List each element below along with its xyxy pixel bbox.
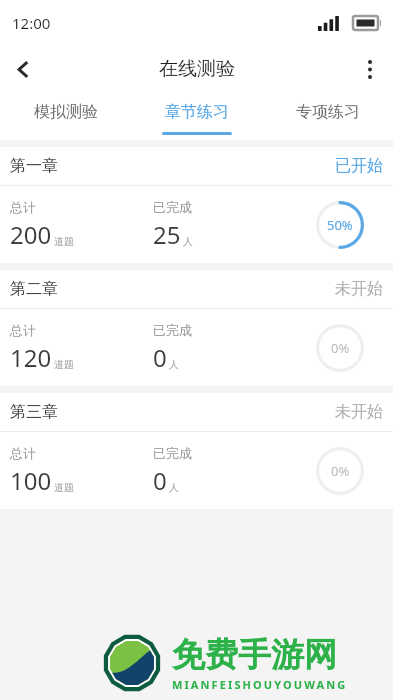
staticText: 模拟测验 bbox=[34, 102, 98, 122]
staticText: 0 bbox=[153, 464, 167, 497]
staticText: 免费手游网 bbox=[172, 634, 337, 676]
staticText: 25 bbox=[153, 218, 181, 251]
button[interactable]: 第二章 bbox=[0, 270, 393, 386]
button[interactable]: More options bbox=[347, 46, 393, 92]
staticText: 0 bbox=[153, 341, 167, 374]
staticText: 120 bbox=[10, 341, 52, 374]
button[interactable]: Back bbox=[0, 46, 46, 92]
staticText: 人 bbox=[169, 481, 179, 494]
staticText: 0% bbox=[331, 462, 350, 480]
staticText: 未开始 bbox=[335, 402, 383, 422]
staticText: 道题 bbox=[54, 481, 74, 494]
staticText: 未开始 bbox=[335, 279, 383, 299]
staticText: 人 bbox=[183, 235, 193, 248]
staticText: 总计 bbox=[10, 199, 36, 215]
staticText: 100 bbox=[10, 464, 52, 497]
button[interactable]: 章节练习 bbox=[131, 92, 262, 140]
staticText: 12:00 bbox=[12, 13, 51, 33]
button[interactable]: 模拟测验 bbox=[0, 92, 131, 140]
staticText: 50% bbox=[327, 216, 353, 234]
button[interactable]: 第三章 bbox=[0, 393, 393, 509]
staticText: 第三章 bbox=[10, 402, 58, 422]
button[interactable]: 专项练习 bbox=[262, 92, 393, 140]
staticText: 总计 bbox=[10, 322, 36, 338]
staticText: 总计 bbox=[10, 445, 36, 461]
staticText: 章节练习 bbox=[165, 102, 229, 122]
staticText: 0% bbox=[331, 339, 350, 357]
staticText: 道题 bbox=[54, 235, 74, 248]
staticText: 道题 bbox=[54, 358, 74, 371]
staticText: 已完成 bbox=[153, 445, 192, 461]
staticText: 第二章 bbox=[10, 279, 58, 299]
staticText: 人 bbox=[169, 358, 179, 371]
staticText: 已开始 bbox=[335, 156, 383, 176]
staticText: 在线测验 bbox=[159, 57, 235, 81]
staticText: 200 bbox=[10, 218, 52, 251]
staticText: 第一章 bbox=[10, 156, 58, 176]
button[interactable]: 第一章 bbox=[0, 147, 393, 263]
staticText: MIANFEISHOUYOUWANG bbox=[172, 677, 348, 692]
staticText: 已完成 bbox=[153, 199, 192, 215]
staticText: 专项练习 bbox=[296, 102, 360, 122]
staticText: 已完成 bbox=[153, 322, 192, 338]
